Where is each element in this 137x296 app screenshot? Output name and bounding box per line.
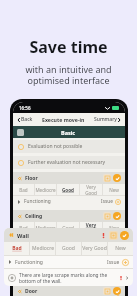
staticText: Evaluation not possible (28, 143, 83, 150)
staticText: Mediocre (35, 263, 56, 269)
staticText: Issue (101, 236, 113, 243)
staticText: Very Good (82, 245, 107, 252)
button[interactable]: Back (17, 116, 33, 123)
staticText: New (109, 263, 119, 269)
staticText: Issue (101, 274, 113, 281)
staticText: 16:56 (19, 105, 31, 111)
button[interactable]: Further evaluation not necessary (13, 156, 125, 169)
button[interactable]: Mediocre (35, 222, 56, 233)
staticText: New (115, 245, 126, 252)
staticText: Bad (19, 225, 28, 231)
other: Collapse (8, 232, 14, 238)
other: Add issue (115, 199, 121, 205)
button[interactable]: Functioning (13, 196, 125, 207)
other: Add issue (115, 275, 121, 281)
button[interactable]: Photo (103, 174, 111, 182)
staticText: New (109, 187, 119, 193)
staticText: Very Good (80, 222, 102, 233)
button[interactable]: Execute move-in (42, 116, 85, 123)
button[interactable]: Collapse (4, 228, 133, 242)
staticText: Very Good (80, 184, 102, 195)
staticText: Save time (29, 36, 108, 58)
staticText: There are large scrape marks along the b… (19, 272, 119, 284)
button[interactable]: Note (4, 269, 133, 286)
staticText: Mediocre (32, 245, 54, 252)
staticText: Bad (19, 187, 28, 193)
button[interactable]: Very Good (82, 242, 107, 255)
button[interactable]: Mediocre (30, 242, 55, 255)
other: Add issue (122, 259, 129, 266)
staticText: with an intuitive and optimised interfac… (25, 63, 112, 87)
staticText: Floor (25, 175, 38, 182)
button[interactable]: Functioning (4, 256, 133, 268)
staticText: Functioning (24, 198, 51, 205)
button[interactable]: Collapse (13, 286, 125, 296)
button[interactable]: Bad (13, 260, 34, 271)
button[interactable]: Photo (103, 250, 111, 258)
button[interactable]: Done (113, 287, 121, 295)
other: Note (8, 274, 16, 282)
staticText: Bad (19, 263, 28, 269)
button[interactable]: Good (57, 184, 79, 195)
button[interactable]: Functioning (13, 234, 125, 245)
button[interactable]: Done (113, 212, 121, 220)
other: Collapse (17, 252, 22, 257)
button[interactable]: Collapse (13, 248, 125, 260)
other: Menu (17, 129, 24, 136)
button[interactable]: Collapse (13, 172, 125, 184)
button[interactable]: Summary (94, 116, 121, 123)
button[interactable]: Bad (13, 222, 34, 233)
staticText: Functioning (15, 259, 43, 266)
staticText: Wall (25, 251, 36, 258)
button[interactable]: Very Good (80, 222, 102, 233)
staticText: Mediocre (35, 225, 56, 231)
button[interactable]: Evaluation not possible (13, 140, 125, 153)
button[interactable]: Mediocre (35, 260, 56, 271)
button[interactable]: Photo (103, 212, 111, 220)
button[interactable]: Done (113, 174, 121, 182)
staticText: Functioning (24, 236, 51, 243)
button[interactable]: Issue (100, 232, 107, 239)
button[interactable]: New (103, 184, 125, 195)
button[interactable]: Good (57, 260, 79, 271)
staticText: Mediocre (35, 187, 56, 193)
button[interactable]: Very Good (80, 184, 102, 195)
staticText: Issue (101, 198, 113, 205)
staticText: New (109, 225, 119, 231)
staticText: Good (62, 225, 74, 231)
button[interactable]: Good (57, 222, 79, 233)
staticText: Ceiling (25, 213, 43, 220)
button[interactable]: Menu (13, 126, 125, 138)
button[interactable]: New (103, 260, 125, 271)
button[interactable]: Very Good (80, 260, 102, 271)
staticText: Functioning (24, 274, 51, 281)
button[interactable]: Bad (13, 184, 34, 195)
staticText: Further evaluation not necessary (28, 159, 106, 166)
button[interactable]: New (103, 222, 125, 233)
button[interactable]: Functioning (13, 272, 125, 283)
staticText: Very Good (80, 260, 102, 271)
button[interactable]: Good (56, 242, 81, 255)
other: Collapse (17, 176, 22, 181)
button[interactable]: Done (113, 250, 121, 258)
staticText: Issue (107, 259, 120, 266)
other: Collapse (17, 289, 22, 294)
staticText: Summary (94, 116, 117, 123)
staticText: Good (62, 263, 74, 269)
button[interactable]: New (108, 242, 133, 255)
button[interactable]: Bad (4, 242, 29, 255)
button[interactable]: Photo (103, 287, 111, 295)
staticText: Back (21, 116, 33, 123)
staticText: Good (62, 187, 74, 193)
other: Add issue (115, 237, 121, 243)
staticText: Door (25, 288, 38, 295)
button[interactable]: Collapse (13, 210, 125, 222)
button[interactable]: Done (120, 231, 129, 240)
button[interactable]: Photo (109, 231, 118, 240)
staticText: Good (62, 245, 75, 252)
staticText: Bad (12, 245, 22, 252)
staticText: Basic (61, 129, 76, 136)
other: Collapse (17, 214, 22, 219)
staticText: Wall (17, 232, 29, 239)
button[interactable]: Mediocre (35, 184, 56, 195)
